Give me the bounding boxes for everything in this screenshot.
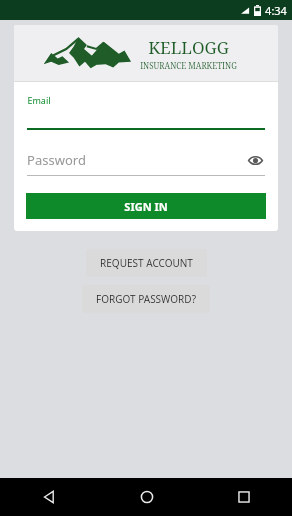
staticText: Email	[27, 94, 51, 106]
staticText: REQUEST ACCOUNT	[100, 256, 193, 270]
button[interactable]: Home	[98, 478, 195, 516]
staticText: INSURANCE MARKETING	[140, 60, 237, 71]
button[interactable]: Email	[14, 94, 278, 130]
button[interactable]: Recent apps	[195, 478, 292, 516]
staticText: KELLOGG	[148, 36, 229, 59]
button[interactable]: REQUEST ACCOUNT	[86, 249, 207, 277]
button[interactable]: Back	[0, 478, 98, 516]
button[interactable]: FORGOT PASSWORD?	[82, 285, 210, 313]
staticText: 4:34	[265, 3, 287, 18]
staticText: FORGOT PASSWORD?	[96, 292, 196, 306]
button[interactable]: SIGN IN	[26, 193, 266, 219]
staticText: Password	[27, 151, 86, 169]
button[interactable]: Show password	[245, 150, 265, 170]
staticText: SIGN IN	[124, 199, 168, 214]
button[interactable]: Password	[14, 150, 278, 176]
